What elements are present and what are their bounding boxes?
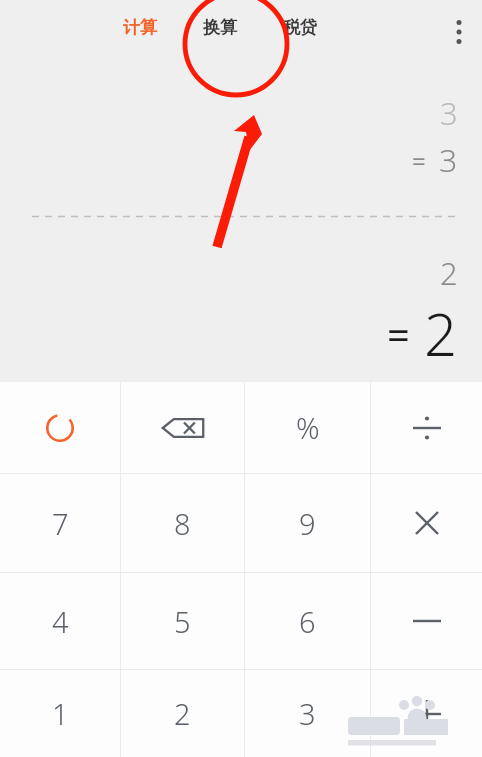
- button[interactable]: More options: [441, 14, 477, 50]
- staticText: 2: [174, 694, 191, 733]
- button[interactable]: 1: [0, 670, 120, 757]
- other: Plus: [410, 697, 444, 731]
- other: Divide: [410, 411, 444, 445]
- button[interactable]: 5: [121, 573, 244, 669]
- staticText: 2: [440, 252, 458, 294]
- button[interactable]: 3: [245, 670, 370, 757]
- other: Clear: [40, 408, 80, 448]
- staticText: 7: [52, 504, 69, 543]
- button[interactable]: %: [245, 382, 370, 473]
- staticText: 3: [439, 138, 458, 182]
- staticText: %: [296, 408, 320, 447]
- other: Backspace: [160, 412, 206, 444]
- staticText: 5: [174, 602, 191, 641]
- staticText: 4: [52, 602, 69, 641]
- button[interactable]: Multiply: [371, 474, 482, 572]
- button[interactable]: 8: [121, 474, 244, 572]
- button[interactable]: 2: [121, 670, 244, 757]
- button[interactable]: Clear: [0, 382, 120, 473]
- button[interactable]: 税贷: [278, 10, 322, 45]
- staticText: 税贷: [283, 17, 317, 38]
- staticText: 换算: [203, 17, 237, 38]
- staticText: =: [412, 144, 426, 177]
- button[interactable]: Plus: [371, 670, 482, 757]
- staticText: 6: [299, 602, 316, 641]
- button[interactable]: 4: [0, 573, 120, 669]
- staticText: 3: [440, 92, 458, 134]
- staticText: 2: [424, 294, 458, 373]
- staticText: 9: [299, 504, 316, 543]
- other: Minus: [410, 604, 444, 638]
- button[interactable]: Divide: [371, 382, 482, 473]
- staticText: 3: [299, 694, 316, 733]
- button[interactable]: Backspace: [121, 382, 244, 473]
- staticText: 计算: [123, 17, 157, 38]
- button[interactable]: 9: [245, 474, 370, 572]
- button[interactable]: 7: [0, 474, 120, 572]
- button[interactable]: 换算: [198, 10, 242, 45]
- staticText: 1: [52, 694, 69, 733]
- staticText: =: [387, 307, 410, 361]
- button[interactable]: 计算: [118, 10, 162, 45]
- staticText: 8: [174, 504, 191, 543]
- button[interactable]: Minus: [371, 573, 482, 669]
- button[interactable]: 6: [245, 573, 370, 669]
- other: Multiply: [410, 506, 444, 540]
